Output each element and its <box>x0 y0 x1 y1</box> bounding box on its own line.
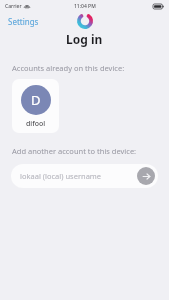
button[interactable]: lokaal (local) username <box>11 164 158 188</box>
button[interactable]: Submit username <box>137 167 155 185</box>
staticText: Settings <box>8 16 39 27</box>
staticText: difool <box>26 119 46 129</box>
staticText: 11:04 PM <box>74 3 96 10</box>
staticText: Accounts already on this device: <box>12 63 125 73</box>
button[interactable]: D <box>12 79 59 133</box>
staticText: D <box>31 91 41 109</box>
button[interactable]: Settings <box>4 14 43 29</box>
staticText: lokaal (local) username <box>20 171 102 181</box>
staticText: Log in <box>66 31 103 47</box>
staticText: Add another account to this device: <box>12 146 137 156</box>
staticText: Carrier <box>5 3 22 10</box>
